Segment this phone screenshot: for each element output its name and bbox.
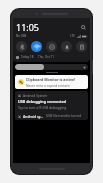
button[interactable]: Bluetooth <box>16 41 27 52</box>
button[interactable]: Do not disturb <box>46 41 57 52</box>
button[interactable]: Search <box>80 24 87 31</box>
staticText: LTE <box>70 34 75 38</box>
staticText: Thu, Oct 11 <box>38 55 55 59</box>
button[interactable]: Clipboard Monitor is active! <box>15 75 88 89</box>
button[interactable]: Alarm <box>61 41 72 52</box>
staticText: 11:05 <box>16 21 40 33</box>
staticText: Tap to turn off USB debugging <box>18 105 67 110</box>
button[interactable]: Brightness <box>15 64 88 70</box>
staticText: Android sy... <box>23 114 44 118</box>
staticText: Today 18 <box>21 55 34 59</box>
staticText: USB file transfer turned on <box>46 114 85 118</box>
button[interactable]: Wi-Fi <box>31 41 42 52</box>
staticText: Android System <box>23 93 48 97</box>
button[interactable]: Battery saver <box>76 41 87 52</box>
staticText: Clipboard Monitor is active! <box>26 77 76 82</box>
staticText: No SIM <box>16 34 27 38</box>
staticText: USB debugging connected <box>18 99 67 104</box>
button[interactable]: USB debugging connected <box>15 99 88 112</box>
button[interactable]: Android sy... <box>15 112 88 120</box>
staticText: Never miss a copied content anymore! <box>26 83 85 87</box>
